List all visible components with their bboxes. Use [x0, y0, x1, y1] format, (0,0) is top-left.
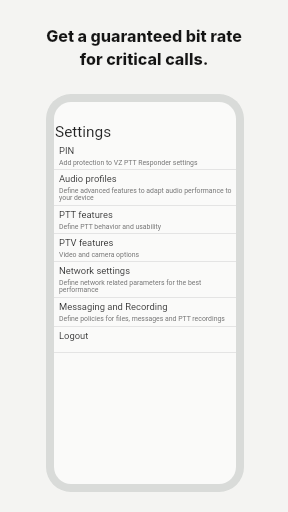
button[interactable]: PIN: [54, 142, 236, 170]
button[interactable]: Network settings: [54, 262, 236, 298]
staticText: Settings: [55, 123, 112, 141]
staticText: Define policies for files, messages and …: [59, 315, 225, 323]
staticText: Define PTT behavior and usability: [59, 223, 162, 231]
staticText: Audio profiles: [59, 173, 117, 184]
staticText: PTT features: [59, 209, 113, 220]
staticText: Video and camera options: [59, 251, 140, 259]
staticText: Get a guaranteed bit rate for critical c…: [46, 26, 242, 69]
staticText: Messaging and Recording: [59, 301, 168, 312]
staticText: Network settings: [59, 265, 130, 276]
button[interactable]: PTV features: [54, 234, 236, 262]
button[interactable]: PTT features: [54, 206, 236, 234]
staticText: Logout: [59, 330, 89, 341]
staticText: PTV features: [59, 237, 114, 248]
button[interactable]: Messaging and Recording: [54, 298, 236, 327]
button[interactable]: Audio profiles: [54, 170, 236, 206]
staticText: Define advanced features to adapt audio …: [59, 187, 234, 201]
staticText: Add protection to VZ PTT Responder setti…: [59, 159, 198, 167]
staticText: Define network related parameters for th…: [59, 279, 234, 293]
button[interactable]: Logout: [54, 327, 236, 353]
staticText: PIN: [59, 145, 75, 156]
